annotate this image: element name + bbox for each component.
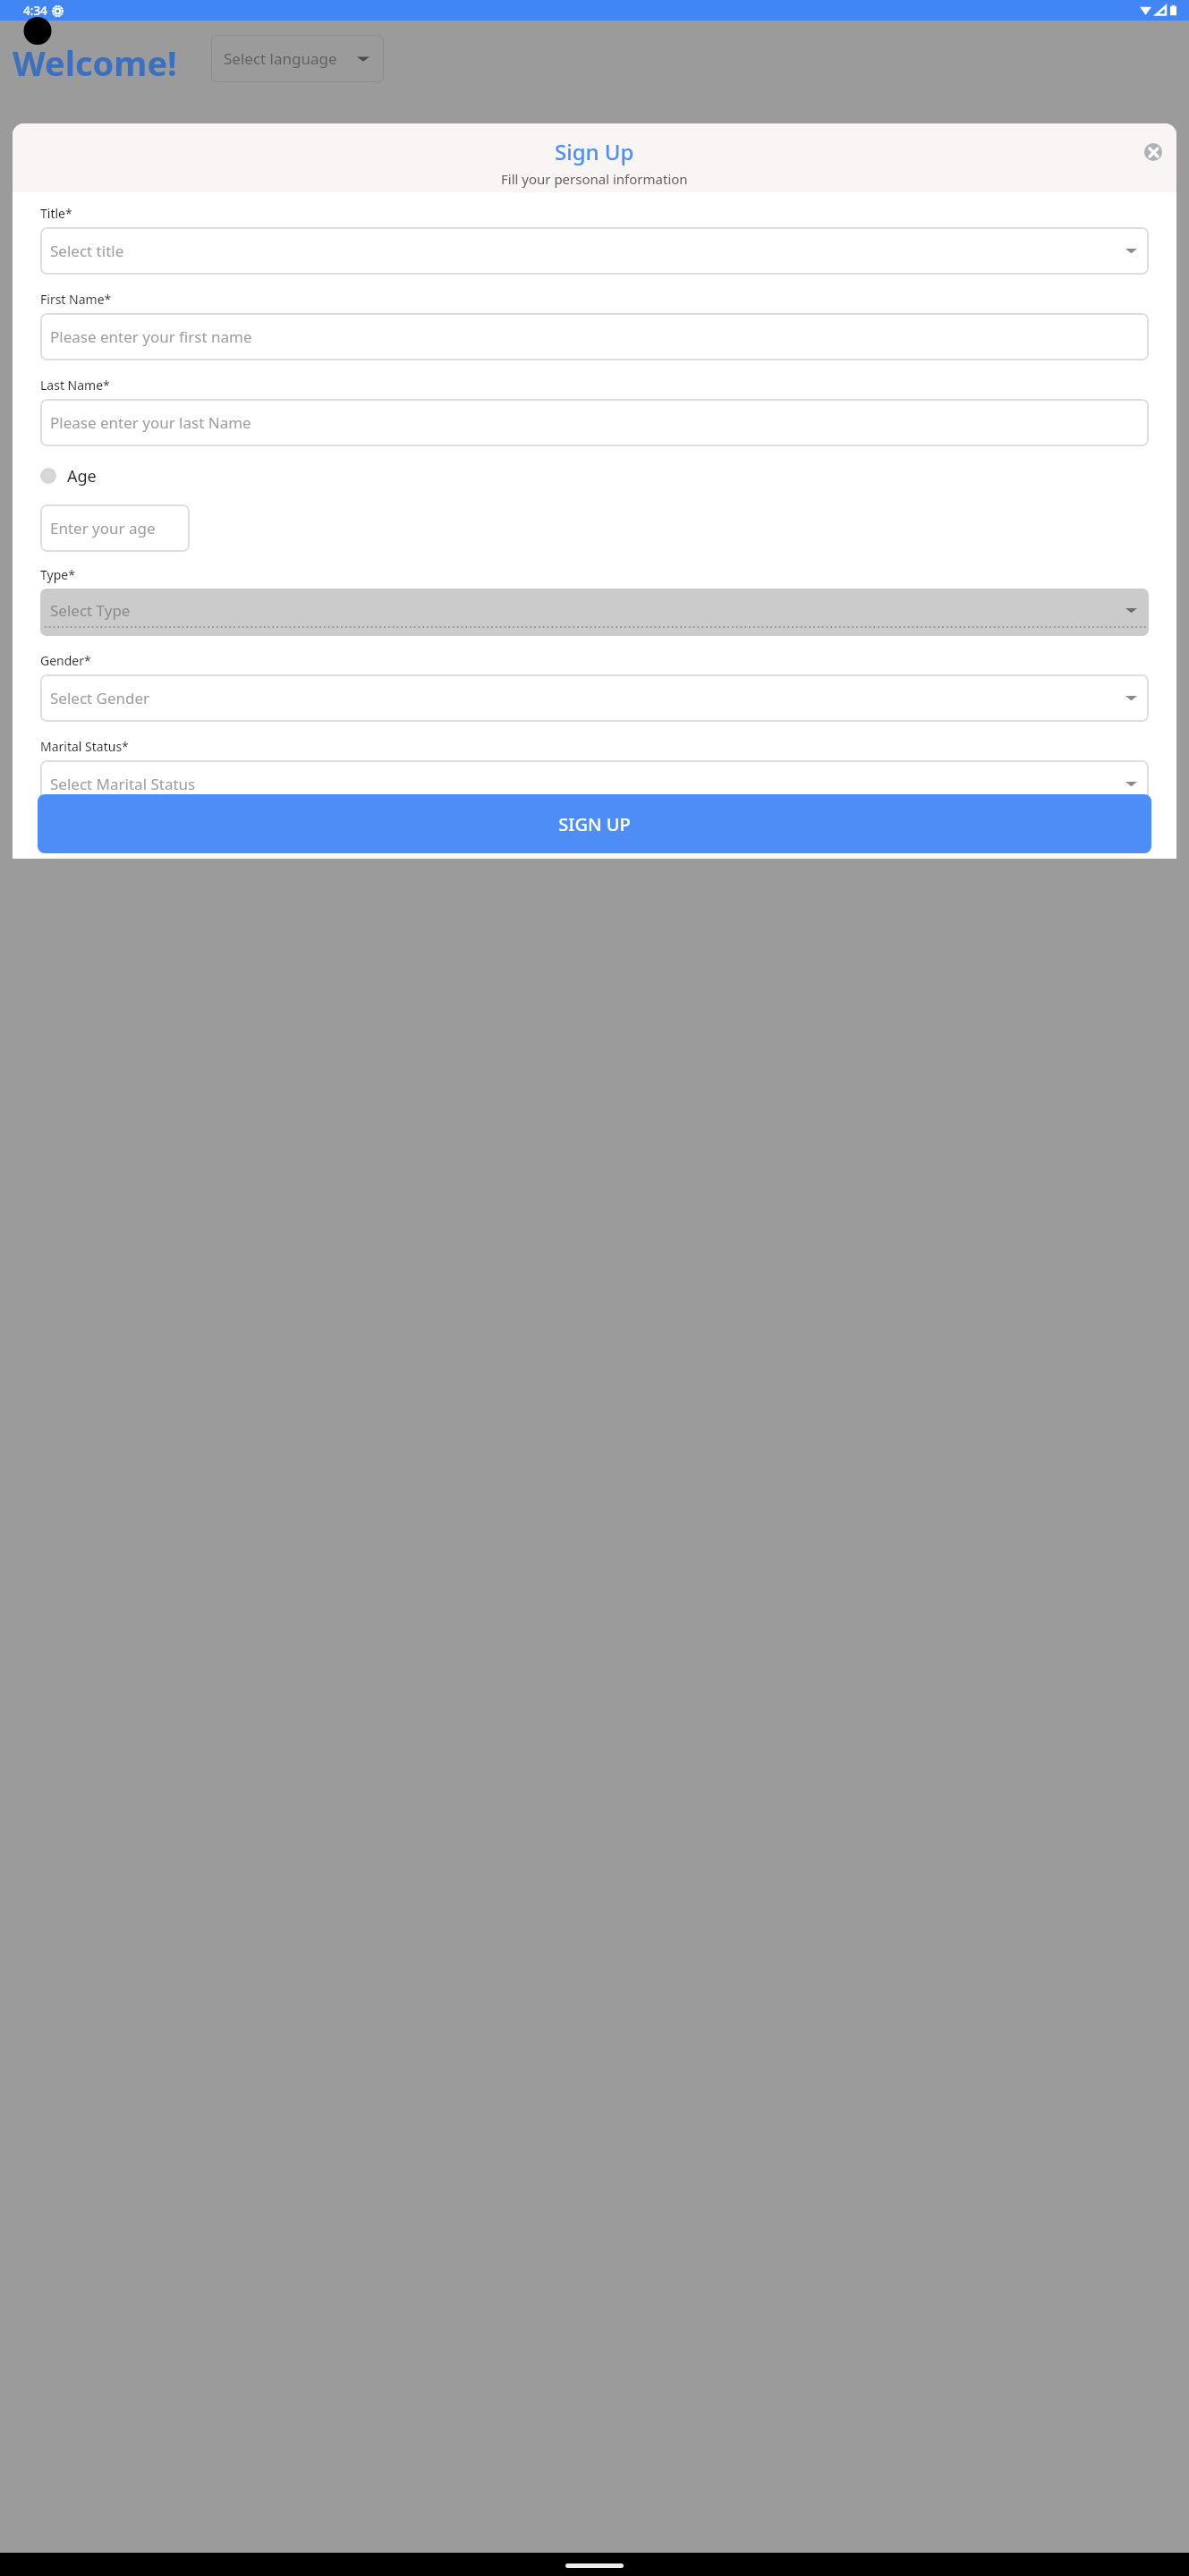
button[interactable]: Please enter your first name: [40, 313, 1149, 360]
staticText: 4:34: [23, 3, 47, 19]
button[interactable]: Select Marital Status: [40, 760, 1149, 808]
button[interactable]: Select Gender: [40, 674, 1149, 722]
button[interactable]: Please enter your last Name: [40, 399, 1149, 446]
staticText: Select Marital Status: [50, 774, 196, 794]
staticText: Please enter your first name: [50, 326, 252, 347]
staticText: Enter your age: [50, 518, 156, 538]
staticText: SIGN UP: [558, 812, 631, 836]
staticText: First Name*: [40, 291, 112, 308]
staticText: Select language: [224, 48, 337, 69]
button[interactable]: Select title: [40, 227, 1149, 275]
staticText: Age: [67, 465, 97, 487]
staticText: Select Gender: [50, 688, 150, 708]
staticText: Welcome!: [13, 39, 177, 86]
staticText: Type*: [40, 566, 75, 583]
button[interactable]: Select Type: [40, 589, 1149, 636]
button[interactable]: Age: [40, 462, 97, 489]
staticText: Please enter your last Name: [50, 412, 251, 433]
button[interactable]: Enter your age: [40, 504, 190, 552]
staticText: Select Type: [50, 600, 131, 621]
staticText: Fill your personal information: [501, 170, 688, 188]
staticText: Marital Status*: [40, 738, 129, 755]
staticText: Gender*: [40, 652, 91, 669]
staticText: Sign Up: [555, 137, 634, 166]
button[interactable]: SIGN UP: [38, 794, 1151, 853]
staticText: Last Name*: [40, 377, 110, 394]
staticText: Select title: [50, 241, 124, 261]
button[interactable]: Close: [1144, 143, 1162, 161]
staticText: Title*: [40, 205, 72, 222]
button[interactable]: Select language: [211, 35, 384, 82]
